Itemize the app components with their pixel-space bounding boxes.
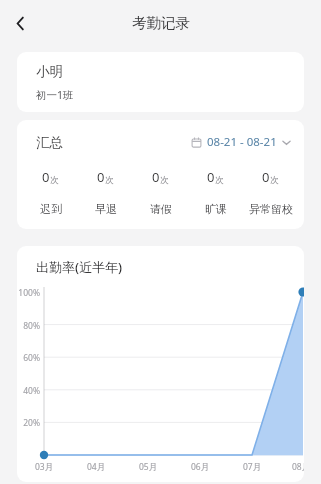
- button[interactable]: Back: [2, 5, 38, 41]
- staticText: 20%: [17, 417, 40, 429]
- staticText: 次: [270, 175, 279, 186]
- button[interactable]: 0: [188, 168, 243, 216]
- staticText: 08月: [292, 461, 304, 473]
- staticText: 80%: [17, 320, 40, 332]
- staticText: 100%: [17, 287, 40, 299]
- button[interactable]: 小明: [17, 52, 304, 112]
- staticText: 次: [50, 175, 59, 186]
- staticText: 次: [215, 175, 224, 186]
- button[interactable]: 08-21 - 08-21: [189, 131, 293, 153]
- staticText: 0: [207, 168, 215, 186]
- button[interactable]: 0: [78, 168, 133, 216]
- staticText: 05月: [139, 461, 158, 473]
- button[interactable]: 0: [133, 168, 188, 216]
- staticText: 出勤率(近半年): [36, 258, 123, 276]
- staticText: 0: [152, 168, 160, 186]
- staticText: 考勤记录: [132, 14, 190, 32]
- staticText: 0: [97, 168, 105, 186]
- staticText: 迟到: [40, 202, 62, 216]
- staticText: 40%: [17, 385, 40, 397]
- staticText: 初一1班: [36, 88, 74, 102]
- staticText: 06月: [191, 461, 210, 473]
- staticText: 03月: [35, 461, 54, 473]
- button[interactable]: 0: [23, 168, 78, 216]
- staticText: 次: [160, 175, 169, 186]
- staticText: 早退: [95, 202, 117, 216]
- staticText: 请假: [150, 202, 172, 216]
- staticText: 07月: [243, 461, 262, 473]
- staticText: 0: [42, 168, 50, 186]
- staticText: 08-21 - 08-21: [207, 134, 277, 150]
- staticText: 60%: [17, 352, 40, 364]
- button[interactable]: 0: [243, 168, 298, 216]
- staticText: 汇总: [36, 134, 63, 151]
- staticText: 0: [262, 168, 270, 186]
- staticText: 异常留校: [249, 202, 293, 216]
- staticText: 小明: [36, 63, 63, 80]
- staticText: 旷课: [205, 202, 227, 216]
- staticText: 04月: [87, 461, 106, 473]
- staticText: 次: [105, 175, 114, 186]
